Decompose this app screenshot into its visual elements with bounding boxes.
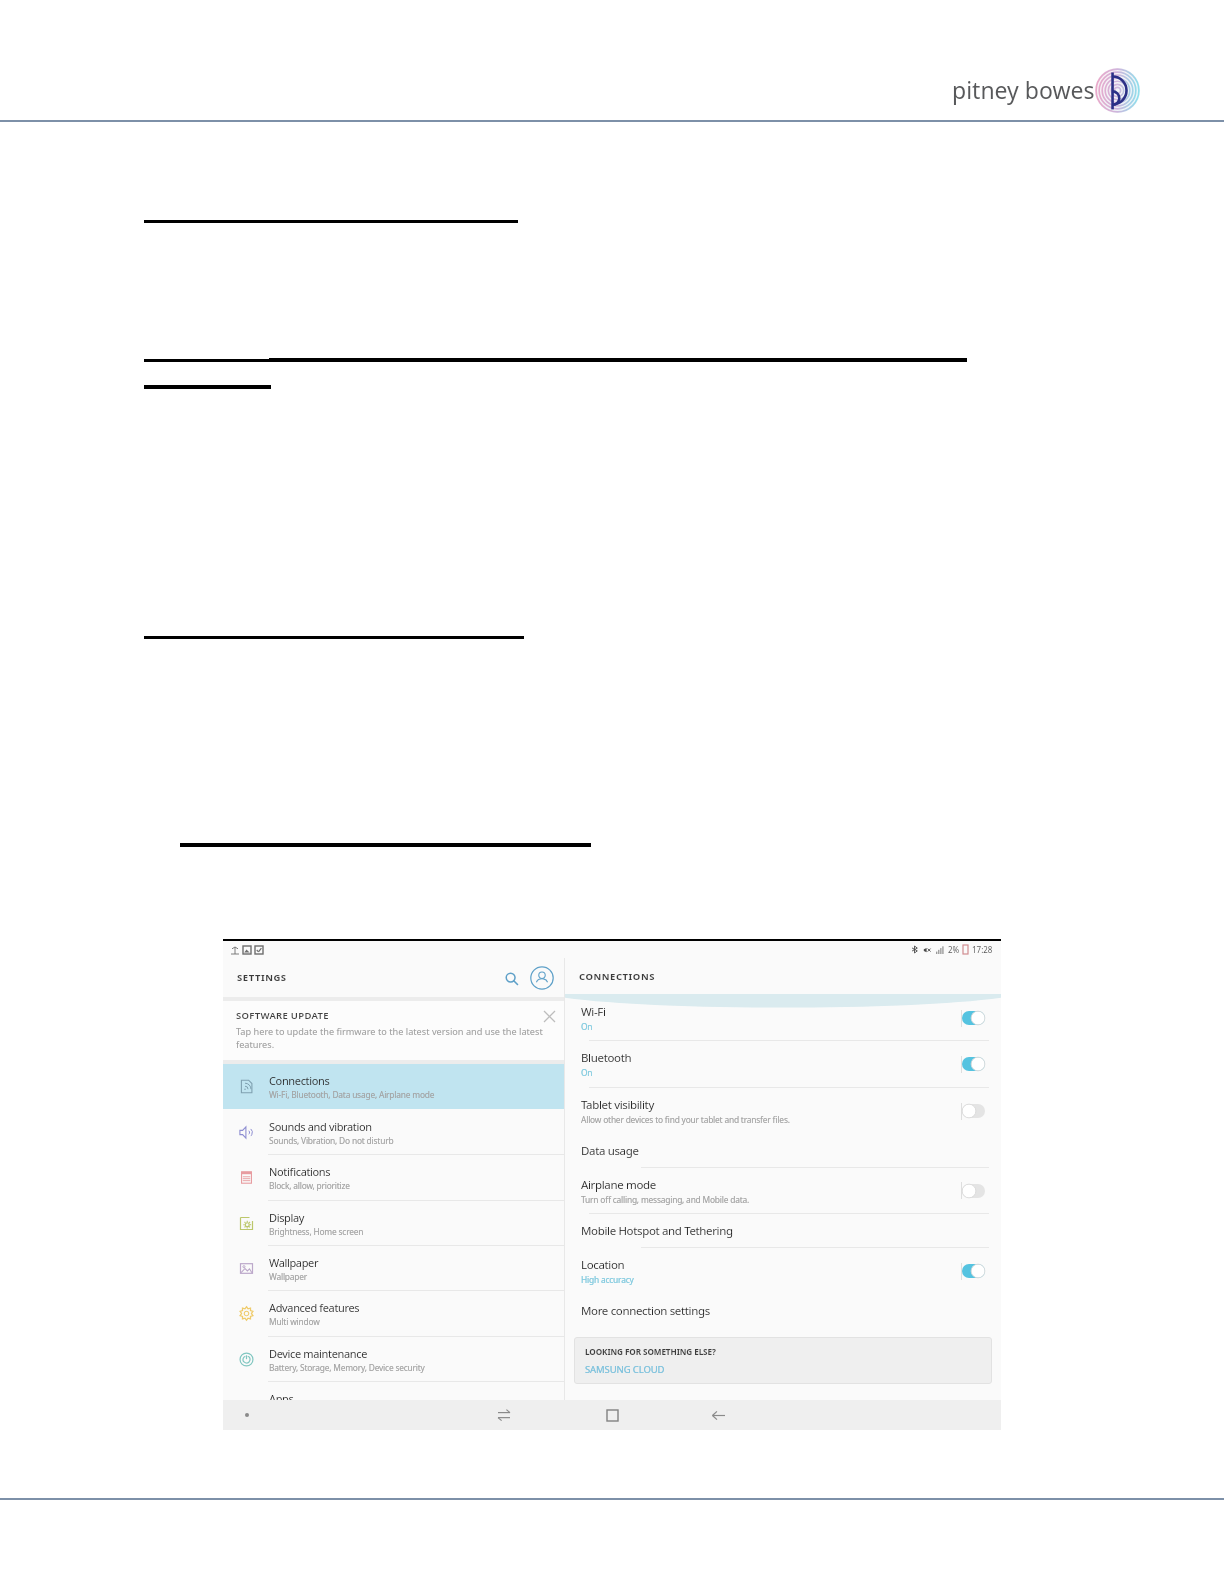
staticText: Sounds and vibration (269, 1119, 372, 1134)
staticText: 17:28 (972, 944, 993, 955)
staticText: SAMSUNG CLOUD (585, 1363, 665, 1376)
staticText: Turn off calling, messaging, and Mobile … (581, 1194, 750, 1205)
staticText: Allow other devices to find your tablet … (581, 1114, 790, 1125)
button[interactable]: Toggle (962, 1264, 985, 1278)
staticText: Multi window (269, 1316, 320, 1327)
button[interactable]: Connections (223, 1064, 564, 1109)
staticText: SOFTWARE UPDATE (236, 1009, 329, 1022)
staticText: Notifications (269, 1164, 331, 1179)
button[interactable]: Airplane mode (565, 1168, 1001, 1213)
button[interactable]: Home (582, 1400, 642, 1430)
button[interactable]: Notifications (223, 1155, 564, 1200)
staticText: Sounds, Vibration, Do not disturb (269, 1135, 394, 1146)
staticText: 2% (948, 944, 960, 955)
button[interactable]: Indicator (229, 1400, 265, 1430)
button[interactable]: Dismiss (540, 1007, 558, 1025)
button[interactable]: Data usage (565, 1134, 1001, 1167)
staticText: Wallpaper (269, 1255, 319, 1270)
button[interactable]: Recents (474, 1400, 534, 1430)
button[interactable]: Toggle (962, 1011, 985, 1025)
staticText: Tap here to update the firmware to the l… (236, 1025, 548, 1051)
staticText: Connections (269, 1073, 330, 1088)
button[interactable]: Toggle (962, 1057, 985, 1071)
button[interactable]: Search (498, 965, 524, 991)
staticText: Wi-Fi, Bluetooth, Data usage, Airplane m… (269, 1089, 435, 1100)
staticText: Block, allow, prioritize (269, 1180, 350, 1191)
button[interactable]: Tablet visibility (565, 1088, 1001, 1134)
button[interactable]: SOFTWARE UPDATE (223, 1001, 564, 1060)
staticText: Device maintenance (269, 1346, 368, 1361)
button[interactable]: Toggle (962, 1104, 985, 1118)
staticText: CONNECTIONS (579, 970, 655, 983)
button[interactable]: LOOKING FOR SOMETHING ELSE? (574, 1337, 992, 1384)
button[interactable]: Bluetooth (565, 1041, 1001, 1087)
staticText: Advanced features (269, 1300, 360, 1315)
button[interactable]: Wallpaper (223, 1246, 564, 1290)
staticText: Battery, Storage, Memory, Device securit… (269, 1362, 425, 1373)
staticText: LOOKING FOR SOMETHING ELSE? (585, 1346, 716, 1357)
staticText: Display (269, 1210, 305, 1225)
staticText: Wi-Fi (581, 1004, 606, 1020)
button[interactable]: Display (223, 1201, 564, 1245)
staticText: On (581, 1067, 593, 1078)
button[interactable]: Sounds and vibration (223, 1110, 564, 1154)
staticText: Apps (269, 1391, 294, 1406)
staticText: Location (581, 1257, 625, 1273)
staticText: Data usage (581, 1143, 639, 1159)
button[interactable]: Toggle (962, 1184, 985, 1198)
staticText: SETTINGS (237, 971, 287, 984)
button[interactable]: Back (688, 1400, 748, 1430)
staticText: Bluetooth (581, 1050, 632, 1066)
staticText: Brightness, Home screen (269, 1226, 364, 1237)
staticText: Airplane mode (581, 1177, 656, 1193)
staticText: More connection settings (581, 1303, 710, 1319)
staticText: Mobile Hotspot and Tethering (581, 1223, 733, 1239)
button[interactable]: More connection settings (565, 1294, 1001, 1327)
button[interactable]: Device maintenance (223, 1337, 564, 1381)
staticText: pitney bowes (952, 74, 1095, 105)
staticText: Wallpaper (269, 1271, 308, 1282)
staticText: Tablet visibility (581, 1097, 654, 1113)
button[interactable]: Wi-Fi (565, 994, 1001, 1040)
staticText: On (581, 1021, 593, 1032)
button[interactable]: Location (565, 1248, 1001, 1294)
button[interactable]: Advanced features (223, 1291, 564, 1336)
button[interactable]: Mobile Hotspot and Tethering (565, 1214, 1001, 1247)
button[interactable]: Account (528, 964, 556, 992)
staticText: High accuracy (581, 1274, 634, 1285)
button[interactable]: Apps (223, 1382, 564, 1426)
